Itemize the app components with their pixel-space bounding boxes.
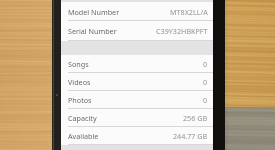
staticText: Photos [68, 95, 92, 105]
button[interactable]: Model Number [61, 2, 213, 21]
staticText: Available [68, 131, 99, 141]
staticText: 0 [203, 59, 208, 69]
staticText: Songs [68, 59, 89, 69]
staticText: 244.77 GB [173, 131, 208, 141]
staticText: C39Y32HBKPFT [156, 26, 208, 36]
staticText: Serial Number [68, 26, 117, 36]
staticText: Model Number [68, 7, 120, 17]
button[interactable]: Capacity [61, 109, 213, 127]
staticText: Capacity [68, 113, 97, 123]
staticText: Videos [68, 77, 91, 87]
staticText: 0 [203, 95, 208, 105]
button[interactable]: Photos [61, 91, 213, 109]
button[interactable]: Available [61, 127, 213, 145]
staticText: MT8X2LL/A [170, 7, 208, 17]
staticText: 0 [203, 77, 208, 87]
staticText: 256 GB [183, 113, 208, 123]
button[interactable]: Videos [61, 73, 213, 91]
button[interactable]: Serial Number [61, 21, 213, 41]
button[interactable]: Songs [61, 55, 213, 73]
